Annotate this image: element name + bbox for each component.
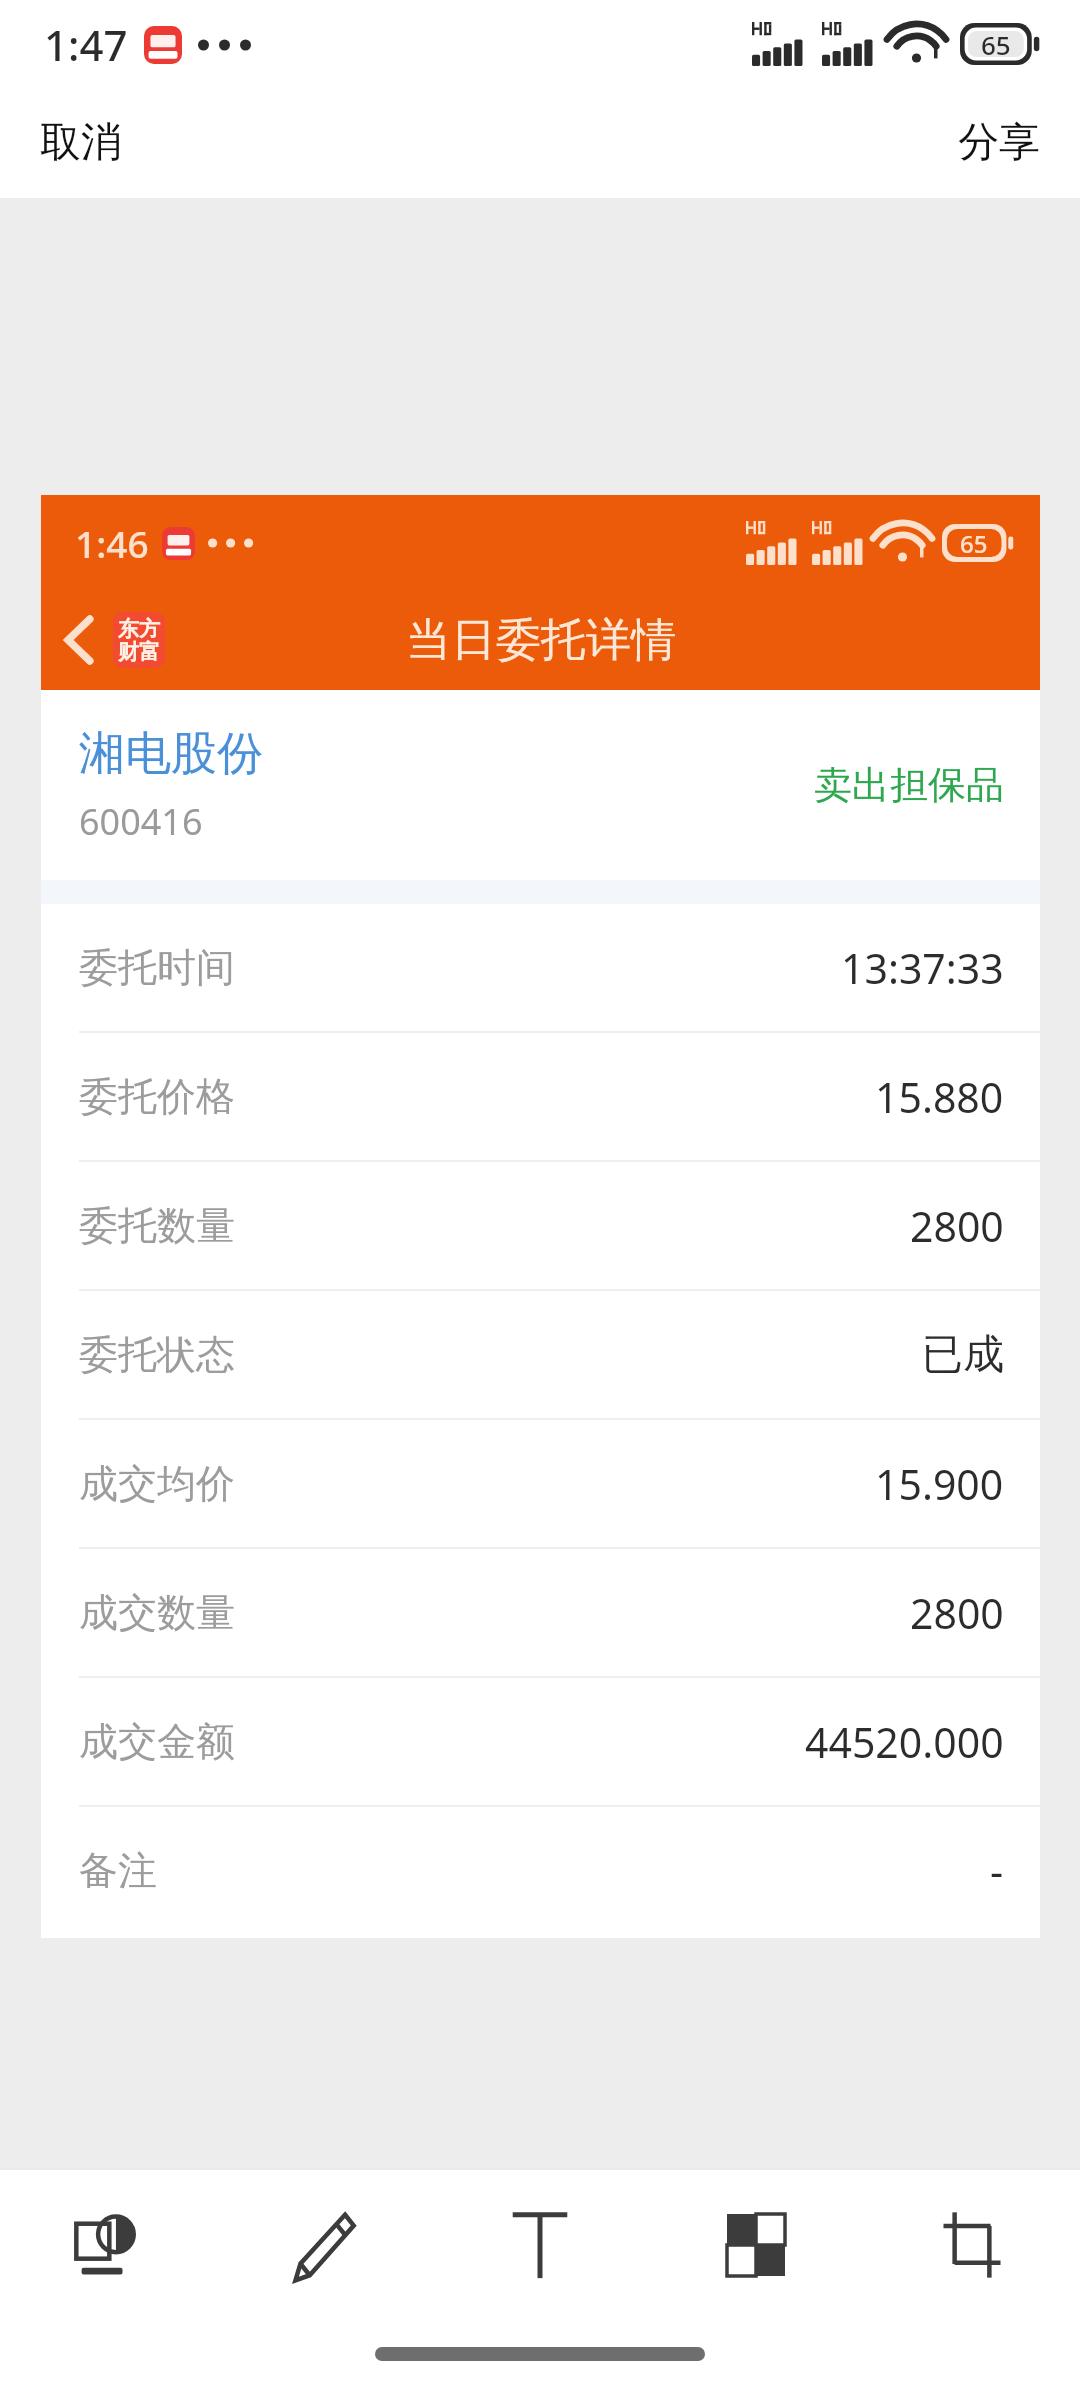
button[interactable]: 文字: [432, 2170, 648, 2320]
staticText: 成交数量: [79, 1588, 235, 1637]
staticText: 2800: [910, 1585, 1004, 1641]
staticText: 取消: [40, 117, 122, 169]
staticText: 当日委托详情: [406, 612, 676, 669]
staticText: 委托时间: [79, 943, 235, 992]
staticText: 65: [960, 527, 988, 560]
staticText: 委托数量: [79, 1201, 235, 1250]
button[interactable]: 返回: [41, 602, 179, 678]
staticText: 成交金额: [79, 1717, 235, 1766]
staticText: 13:37:33: [841, 940, 1004, 996]
staticText: 已成: [922, 1329, 1004, 1381]
staticText: -: [990, 1843, 1004, 1899]
staticText: 备注: [79, 1846, 157, 1895]
staticText: 成交均价: [79, 1459, 235, 1508]
button[interactable]: 分享: [932, 103, 1080, 183]
button[interactable]: 委托时间: [41, 904, 1040, 1031]
staticText: 1:47: [44, 16, 128, 73]
staticText: 65: [981, 27, 1011, 62]
button[interactable]: 形状: [0, 2170, 216, 2320]
staticText: 卖出担保品: [814, 761, 1004, 809]
staticText: 分享: [958, 117, 1040, 169]
staticText: 15.880: [875, 1069, 1004, 1125]
button[interactable]: 成交金额: [41, 1678, 1040, 1805]
staticText: 1:46: [75, 518, 149, 568]
staticText: 东方 财富: [118, 616, 160, 665]
button[interactable]: 委托状态: [41, 1291, 1040, 1418]
staticText: 委托状态: [79, 1330, 235, 1379]
button[interactable]: 画笔: [216, 2170, 432, 2320]
staticText: 委托价格: [79, 1072, 235, 1121]
button[interactable]: 取消: [0, 103, 148, 183]
button[interactable]: 裁剪: [864, 2170, 1080, 2320]
staticText: 600416: [79, 797, 203, 846]
button[interactable]: 马赛克: [648, 2170, 864, 2320]
button[interactable]: 委托价格: [41, 1033, 1040, 1160]
staticText: 15.900: [875, 1456, 1004, 1512]
staticText: 44520.000: [805, 1714, 1004, 1770]
staticText: 2800: [910, 1198, 1004, 1254]
button[interactable]: 备注: [41, 1807, 1040, 1934]
button[interactable]: 成交数量: [41, 1549, 1040, 1676]
button[interactable]: 委托数量: [41, 1162, 1040, 1289]
staticText: 湘电股份: [79, 725, 263, 783]
button[interactable]: 成交均价: [41, 1420, 1040, 1547]
